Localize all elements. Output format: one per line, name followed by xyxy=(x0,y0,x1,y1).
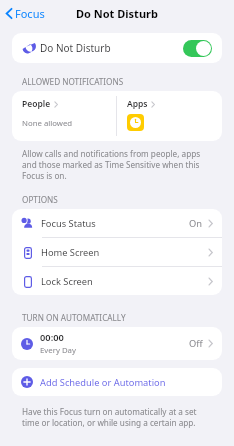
staticText: Do Not Disturb xyxy=(40,41,111,55)
staticText: Add Schedule or Automation xyxy=(40,376,166,389)
staticText: Every Day xyxy=(40,345,76,356)
staticText: On xyxy=(189,217,203,230)
staticText: TURN ON AUTOMATICALLY xyxy=(22,312,126,323)
button[interactable]: 00:00 xyxy=(12,327,222,360)
staticText: Focus xyxy=(15,6,45,21)
button[interactable]: People xyxy=(12,91,116,141)
staticText: Have this Focus turn on automatically at… xyxy=(22,406,216,428)
staticText: Focus Status xyxy=(41,217,96,230)
staticText: Do Not Disturb xyxy=(76,6,158,21)
staticText: Lock Screen xyxy=(41,275,93,288)
staticText: OPTIONS xyxy=(22,194,58,205)
button[interactable]: Lock Screen xyxy=(12,267,222,295)
button[interactable]: Focus xyxy=(0,3,52,24)
button[interactable]: Home Screen xyxy=(12,238,222,266)
staticText: Apps xyxy=(127,98,148,110)
staticText: Home Screen xyxy=(41,246,100,259)
button[interactable]: Do Not Disturb xyxy=(12,33,222,63)
button[interactable]: Focus Status xyxy=(12,209,222,237)
staticText: ALLOWED NOTIFICATIONS xyxy=(22,76,124,87)
button[interactable]: Add Schedule or Automation xyxy=(12,368,222,396)
staticText: 00:00 xyxy=(40,331,64,344)
staticText: Off xyxy=(189,337,203,350)
staticText: People xyxy=(22,98,51,110)
staticText: Allow calls and notifications from peopl… xyxy=(22,148,216,181)
button[interactable]: Apps xyxy=(117,91,222,141)
staticText: None allowed xyxy=(22,118,73,129)
button[interactable]: Do Not Disturb toggle xyxy=(183,40,212,57)
